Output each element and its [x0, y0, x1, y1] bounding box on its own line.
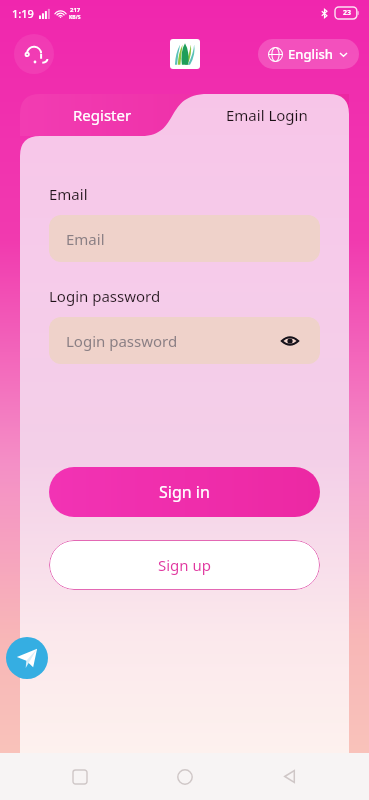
button[interactable]: Email: [49, 215, 320, 262]
staticText: Register: [73, 105, 132, 125]
button[interactable]: Support: [14, 34, 54, 74]
button[interactable]: Login password: [49, 317, 320, 364]
button[interactable]: Show password: [277, 328, 303, 354]
staticText: 217: [70, 6, 81, 14]
button[interactable]: Sign in: [49, 467, 320, 517]
staticText: Email: [49, 184, 88, 204]
button[interactable]: Register: [20, 94, 184, 136]
button[interactable]: Home: [161, 753, 209, 800]
staticText: 23: [343, 8, 352, 18]
staticText: Sign in: [159, 481, 210, 503]
staticText: Login password: [66, 331, 178, 351]
staticText: KB/S: [69, 14, 81, 21]
button[interactable]: Email Login: [184, 94, 349, 136]
staticText: Email: [66, 229, 105, 249]
staticText: Email Login: [226, 105, 308, 125]
staticText: Sign up: [158, 555, 211, 575]
button[interactable]: Recents: [56, 753, 104, 800]
button[interactable]: English: [258, 39, 359, 69]
button[interactable]: Sign up: [49, 540, 320, 590]
staticText: 1:19: [12, 6, 34, 21]
staticText: English: [288, 45, 333, 63]
staticText: Login password: [49, 286, 161, 306]
button[interactable]: Telegram: [6, 637, 48, 679]
button[interactable]: Back: [265, 753, 313, 800]
